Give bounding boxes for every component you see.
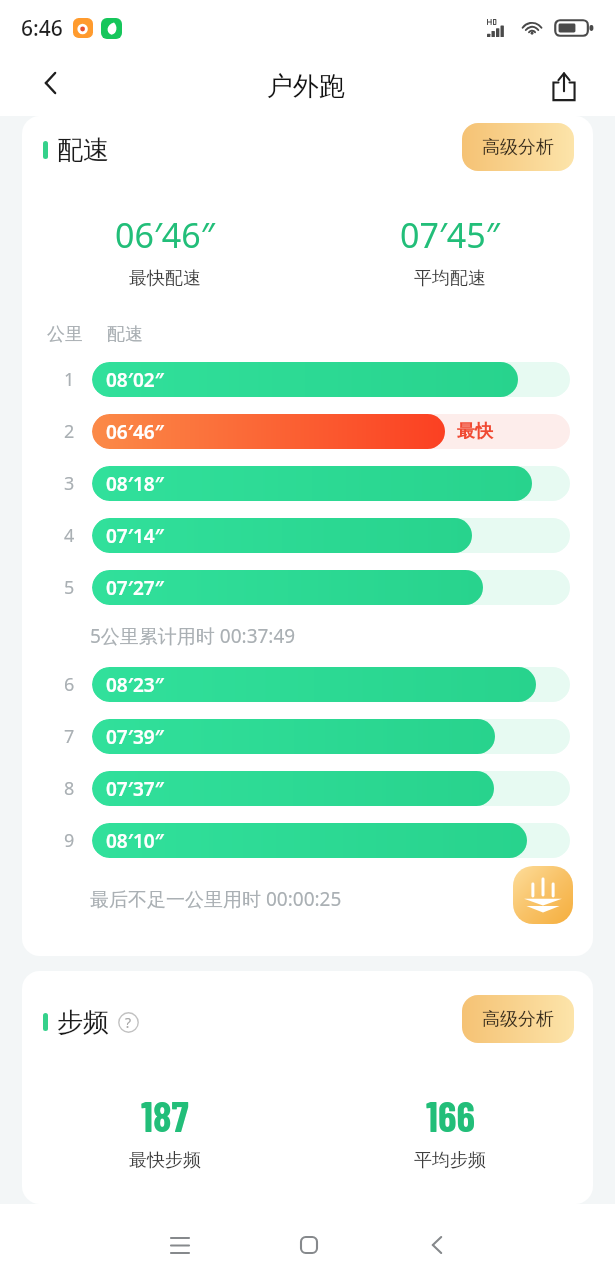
staticText: 户外跑 [267,70,345,103]
staticText: 187 [141,1090,189,1140]
staticText: 08′23″ [106,672,164,698]
staticText: 最快配速 [129,267,201,290]
staticText: 07′27″ [106,575,164,601]
staticText: 06′46″ [115,212,215,258]
staticText: 9 [64,828,75,853]
staticText: 6 [64,672,75,697]
staticText: 5公里累计用时 00:37:49 [90,623,296,649]
staticText: 1 [64,367,75,392]
staticText: 4 [64,523,75,548]
staticText: 最快步频 [129,1149,201,1172]
staticText: 07′14″ [106,523,164,549]
staticText: 平均配速 [414,267,486,290]
staticText: 高级分析 [482,136,554,159]
button[interactable]: Share [512,56,615,116]
staticText: 06′46″ [106,419,164,445]
staticText: 公里 [47,323,83,346]
staticText: 08′02″ [106,367,164,393]
button[interactable]: 高级分析 [462,123,574,171]
button[interactable]: Recent apps [150,1215,210,1275]
staticText: 2 [64,419,75,444]
staticText: 08′18″ [106,471,164,497]
staticText: 平均步频 [414,1149,486,1172]
staticText: 5 [64,575,75,600]
staticText: 7 [64,724,75,749]
staticText: 最快 [457,420,493,443]
button[interactable]: Back [0,56,100,116]
staticText: 3 [64,471,75,496]
staticText: 步频 [57,1006,109,1039]
staticText: 6:46 [21,14,63,43]
staticText: 07′45″ [400,212,500,258]
staticText: 07′39″ [106,724,164,750]
button[interactable]: Back [407,1215,467,1275]
staticText: 8 [64,776,75,801]
button[interactable]: Home [279,1215,339,1275]
staticText: 最后不足一公里用时 00:00:25 [90,886,342,912]
button[interactable]: 高级分析 [462,995,574,1043]
staticText: 166 [426,1090,475,1140]
button[interactable]: Layers [513,866,573,924]
staticText: 08′10″ [106,828,164,854]
staticText: 高级分析 [482,1008,554,1031]
staticText: ? [125,1013,132,1032]
staticText: 配速 [107,323,143,346]
staticText: 07′37″ [106,776,164,802]
staticText: 配速 [57,134,109,167]
